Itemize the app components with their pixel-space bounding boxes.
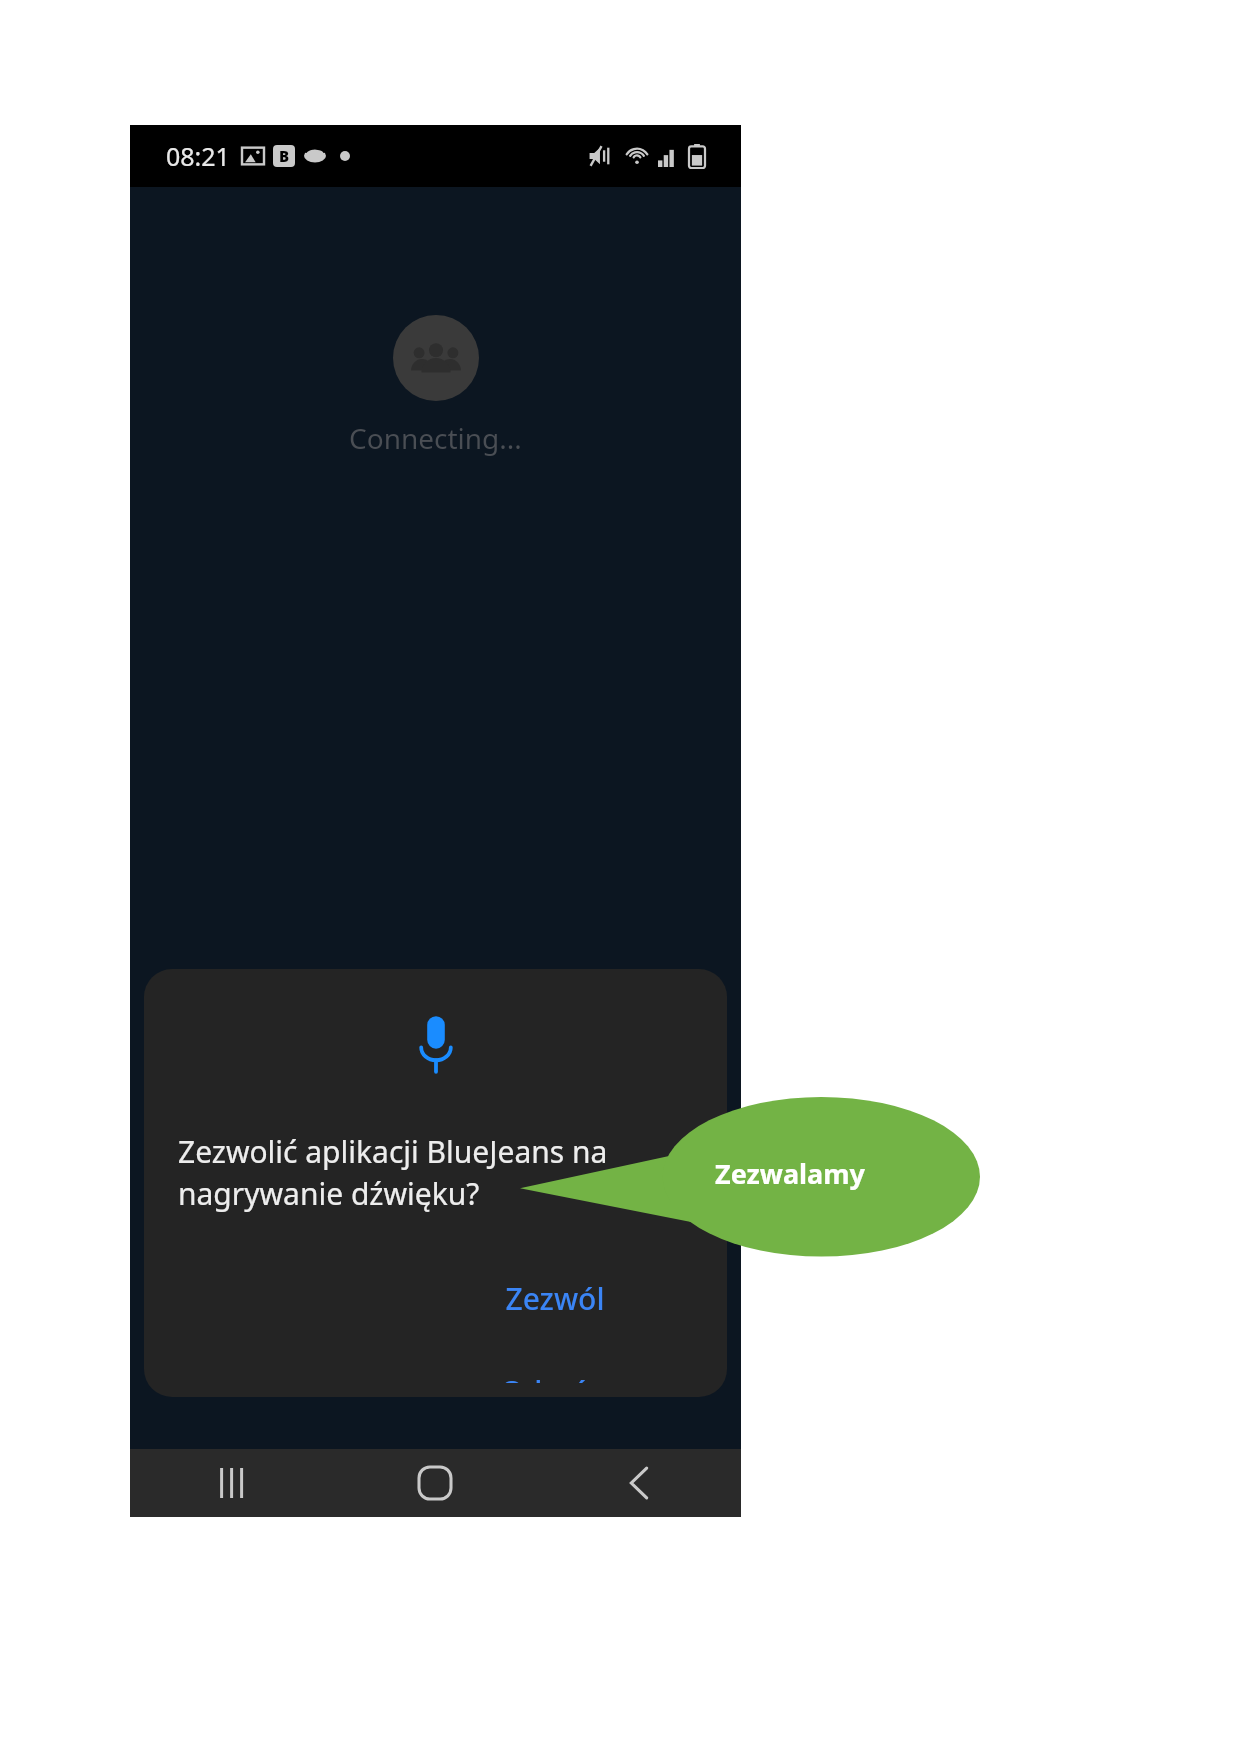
button[interactable]: Recent apps (130, 1449, 333, 1517)
button[interactable]: Zezwól (479, 1264, 631, 1333)
other: Microphone (416, 1015, 456, 1073)
staticText: Zezwól (505, 1278, 605, 1319)
staticText: Odmów (500, 1371, 613, 1383)
staticText: B (279, 146, 290, 166)
staticText: Zezwalamy (715, 1155, 866, 1192)
staticText: Connecting... (349, 419, 522, 457)
button[interactable]: Home (333, 1449, 537, 1517)
staticText: Zezwolić aplikacji BlueJeans na nagrywan… (178, 1131, 703, 1214)
button[interactable]: Back (537, 1449, 741, 1517)
staticText: 08:21 (166, 139, 230, 173)
button[interactable]: Odmów (474, 1357, 639, 1397)
